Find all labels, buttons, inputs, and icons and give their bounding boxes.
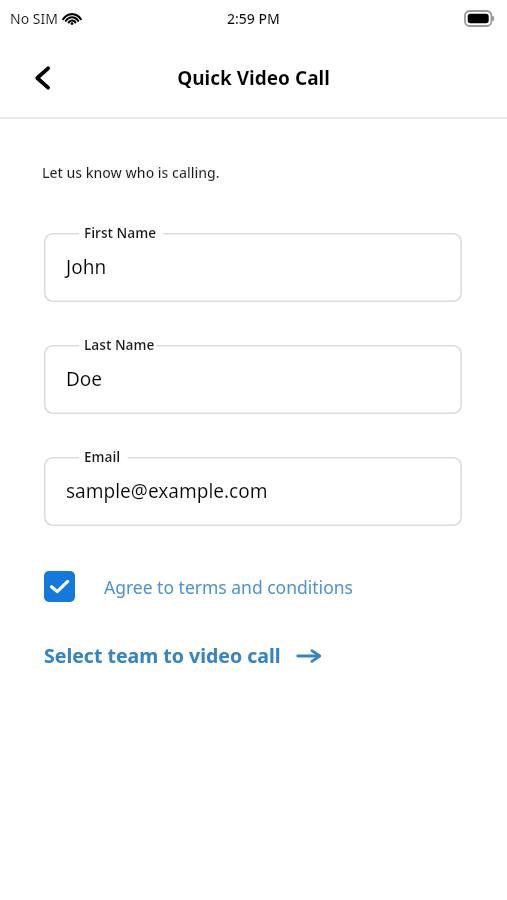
- staticText: Select team to video call: [44, 642, 281, 669]
- staticText: Doe: [66, 366, 103, 392]
- staticText: Quick Video Call: [177, 65, 330, 91]
- staticText: sample@example.com: [66, 478, 268, 504]
- staticText: Last Name: [84, 336, 155, 354]
- staticText: First Name: [84, 224, 157, 242]
- button[interactable]: Back: [20, 55, 66, 101]
- staticText: Let us know who is calling.: [42, 163, 220, 182]
- staticText: 2:59 PM: [227, 9, 280, 28]
- button[interactable]: Email: [44, 448, 462, 526]
- staticText: John: [66, 254, 107, 280]
- button[interactable]: Select team to video call: [44, 642, 321, 669]
- staticText: Agree to terms and conditions: [104, 575, 353, 599]
- button[interactable]: Agree to terms and conditions: [44, 571, 353, 602]
- button[interactable]: Last Name: [44, 336, 462, 414]
- button[interactable]: First Name: [44, 224, 462, 302]
- staticText: No SIM: [10, 9, 58, 28]
- staticText: Email: [84, 448, 121, 466]
